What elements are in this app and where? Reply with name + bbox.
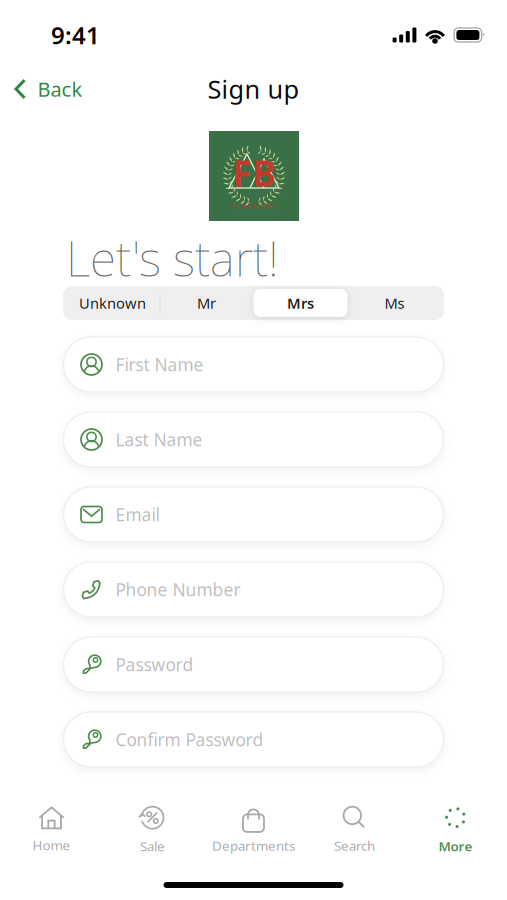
staticText: 9:41 bbox=[51, 19, 100, 51]
staticText: First Name bbox=[115, 353, 203, 376]
staticText: Back bbox=[37, 76, 82, 102]
staticText: Mr bbox=[197, 293, 216, 313]
staticText: Password bbox=[115, 653, 193, 676]
button[interactable]: Search bbox=[304, 799, 405, 861]
staticText: Email bbox=[115, 503, 159, 526]
staticText: Sign up bbox=[207, 72, 299, 106]
button[interactable]: First Name bbox=[63, 337, 443, 392]
staticText: Sale bbox=[140, 837, 165, 855]
button[interactable]: Unknown bbox=[65, 289, 159, 317]
staticText: Departments bbox=[212, 837, 295, 854]
button[interactable]: Back bbox=[0, 67, 96, 111]
button[interactable]: Phone Number bbox=[63, 562, 443, 617]
staticText: Mrs bbox=[287, 293, 314, 313]
button[interactable]: Home bbox=[1, 799, 102, 861]
button[interactable]: Confirm Password bbox=[63, 712, 443, 767]
button[interactable]: Sale bbox=[102, 799, 203, 861]
staticText: Let's start! bbox=[66, 226, 279, 290]
button[interactable]: Email bbox=[63, 487, 443, 542]
button[interactable]: More bbox=[405, 799, 506, 861]
staticText: Confirm Password bbox=[115, 728, 263, 751]
staticText: F I N C H B A Y bbox=[231, 202, 276, 210]
staticText: Search bbox=[334, 837, 375, 854]
button[interactable]: Ms bbox=[347, 289, 441, 317]
button[interactable]: Mr bbox=[159, 289, 253, 317]
button[interactable]: Last Name bbox=[63, 412, 443, 467]
staticText: Last Name bbox=[115, 428, 202, 451]
button[interactable]: Password bbox=[63, 637, 443, 692]
staticText: More bbox=[438, 837, 472, 855]
staticText: Unknown bbox=[79, 293, 146, 313]
staticText: Ms bbox=[384, 293, 404, 313]
button[interactable]: Departments bbox=[203, 799, 304, 861]
staticText: FB bbox=[232, 149, 276, 196]
staticText: Phone Number bbox=[115, 578, 240, 601]
button[interactable]: Mrs bbox=[253, 289, 347, 317]
staticText: Home bbox=[32, 836, 70, 854]
